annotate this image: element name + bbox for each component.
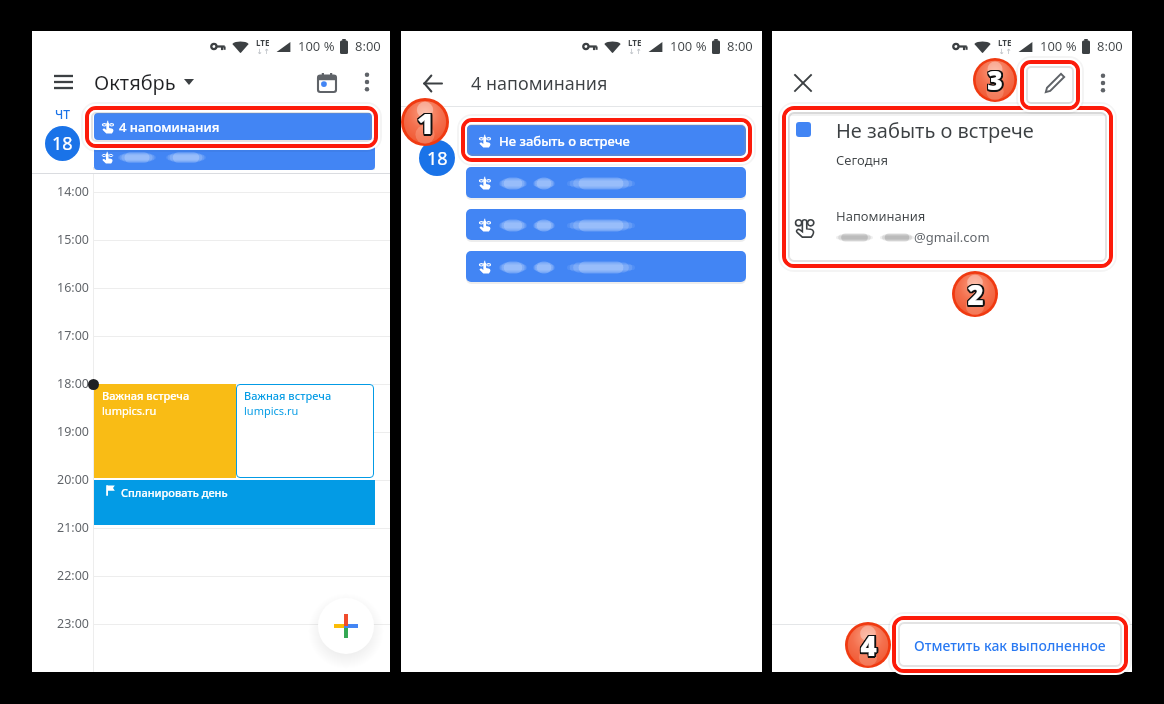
- staticText: 2: [968, 276, 985, 314]
- staticText: 1: [418, 102, 435, 141]
- staticText: 1: [419, 104, 436, 143]
- staticText: 3: [988, 64, 1004, 100]
- staticText: 4: [859, 628, 876, 666]
- button[interactable]: Не забыть о встрече: [466, 125, 746, 156]
- staticText: 4: [859, 625, 876, 663]
- staticText: 3: [986, 64, 1002, 100]
- staticText: 18: [52, 131, 73, 156]
- staticText: 4 напоминания: [471, 71, 608, 96]
- button[interactable]: [94, 144, 375, 170]
- staticText: 4: [862, 625, 879, 663]
- button[interactable]: Edit: [1033, 61, 1077, 105]
- staticText: 1: [418, 104, 435, 143]
- staticText: ↑: [636, 48, 642, 56]
- staticText: 3: [988, 61, 1004, 97]
- staticText: 1: [418, 102, 435, 141]
- button[interactable]: Close: [781, 61, 825, 105]
- staticText: 3: [986, 62, 1002, 98]
- staticText: Октябрь: [94, 69, 176, 96]
- staticText: 2: [968, 274, 985, 312]
- staticText: 100 %: [670, 37, 707, 55]
- button[interactable]: Спланировать день: [94, 480, 375, 525]
- button[interactable]: Октябрь: [94, 67, 194, 97]
- staticText: 4: [860, 627, 877, 665]
- button[interactable]: Важная встреча: [236, 384, 374, 478]
- button[interactable]: Отметить как выполненное: [902, 626, 1118, 664]
- staticText: 3: [986, 63, 1002, 99]
- staticText: @gmail.com: [914, 228, 990, 246]
- staticText: 2: [967, 274, 984, 312]
- staticText: Напоминания: [836, 207, 926, 225]
- staticText: 4: [859, 626, 876, 664]
- staticText: 3: [986, 61, 1002, 97]
- staticText: 1: [416, 102, 433, 141]
- staticText: 100 %: [298, 37, 335, 55]
- staticText: lumpics.ru: [102, 403, 157, 418]
- staticText: 3: [986, 63, 1002, 99]
- button[interactable]: Thursday 18: [40, 106, 84, 161]
- staticText: 8:00: [1097, 37, 1123, 55]
- staticText: Важная встреча: [102, 388, 190, 403]
- staticText: 3: [987, 64, 1003, 100]
- staticText: 2: [969, 275, 986, 313]
- staticText: 1: [416, 102, 433, 141]
- staticText: 2: [968, 274, 985, 312]
- staticText: ↓: [999, 48, 1005, 56]
- staticText: 1: [417, 102, 434, 141]
- staticText: 4 напоминания: [119, 118, 220, 136]
- staticText: 3: [986, 61, 1002, 97]
- button[interactable]: [466, 167, 746, 198]
- button[interactable]: Today: [305, 60, 349, 104]
- button[interactable]: Create event: [318, 598, 374, 654]
- staticText: 4: [862, 626, 879, 664]
- staticText: 3: [988, 61, 1004, 97]
- button[interactable]: Menu: [41, 60, 85, 104]
- button[interactable]: Back: [410, 61, 454, 105]
- button[interactable]: Важная встреча: [94, 384, 236, 478]
- staticText: 3: [988, 62, 1004, 98]
- staticText: 1: [418, 105, 435, 144]
- staticText: 2: [966, 277, 983, 315]
- staticText: 3: [988, 63, 1004, 99]
- staticText: ↑: [264, 48, 270, 56]
- button[interactable]: 4 напоминания: [94, 113, 375, 140]
- staticText: Сегодня: [836, 151, 889, 169]
- staticText: 1: [416, 104, 433, 143]
- staticText: 1: [419, 102, 436, 141]
- staticText: ↓: [257, 48, 263, 56]
- staticText: 2: [966, 276, 983, 314]
- button[interactable]: [466, 209, 746, 240]
- button[interactable]: 18: [419, 140, 455, 176]
- staticText: 1: [416, 103, 433, 142]
- staticText: LTE: [628, 37, 642, 48]
- staticText: 4: [861, 627, 878, 665]
- staticText: 4: [860, 625, 877, 663]
- staticText: 4: [860, 626, 877, 664]
- staticText: 4: [861, 628, 878, 666]
- staticText: 4: [860, 628, 877, 666]
- staticText: 22:00: [57, 567, 89, 584]
- staticText: 3: [987, 61, 1003, 97]
- staticText: 3: [986, 62, 1002, 98]
- staticText: 15:00: [57, 231, 89, 248]
- button[interactable]: More options: [349, 64, 385, 100]
- staticText: 4: [859, 626, 876, 664]
- staticText: 1: [416, 103, 433, 142]
- staticText: 8:00: [355, 37, 381, 55]
- staticText: 17:00: [57, 327, 89, 344]
- staticText: ↑: [1006, 48, 1012, 56]
- staticText: 2: [969, 274, 986, 312]
- staticText: 4: [861, 626, 878, 664]
- button[interactable]: More options: [1085, 65, 1121, 101]
- staticText: 1: [416, 104, 433, 143]
- staticText: 4: [860, 625, 877, 663]
- staticText: 4: [861, 625, 878, 663]
- staticText: 1: [416, 102, 433, 141]
- staticText: LTE: [998, 37, 1012, 48]
- staticText: 1: [417, 104, 434, 143]
- staticText: 4: [859, 627, 876, 665]
- staticText: 20:00: [57, 471, 89, 488]
- staticText: LTE: [256, 37, 270, 48]
- staticText: 2: [966, 275, 983, 313]
- button[interactable]: [466, 251, 746, 282]
